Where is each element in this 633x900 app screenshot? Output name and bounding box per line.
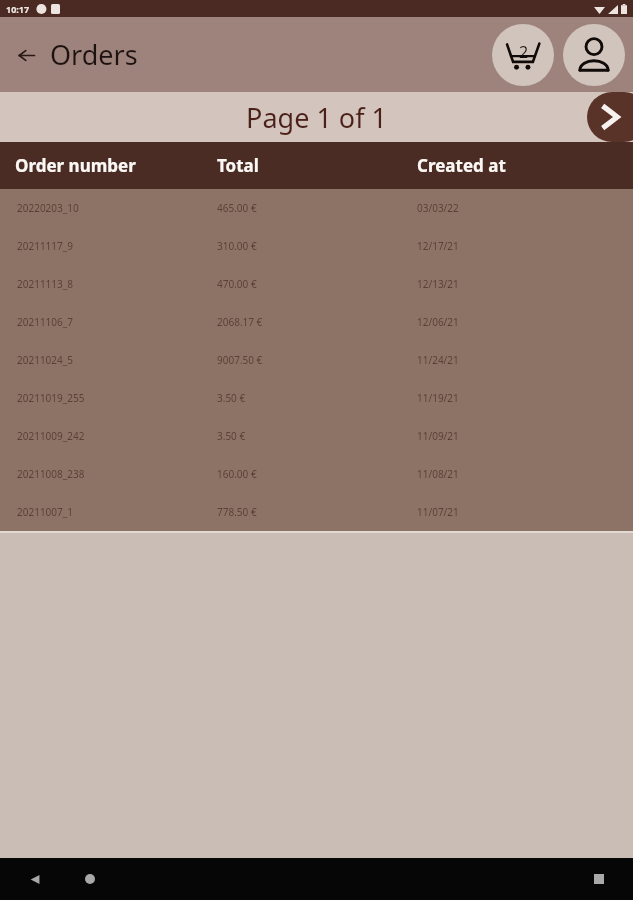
staticText: 12/06/21 [417,315,459,329]
staticText: 3.50 € [217,391,417,405]
button[interactable]: 20211113_8 [0,265,633,303]
button[interactable]: 20211106_7 [0,303,633,341]
staticText: 11/09/21 [417,429,459,443]
staticText: 11/07/21 [417,505,459,519]
staticText: 20211008_238 [17,467,217,481]
button[interactable]: 20211024_5 [0,341,633,379]
staticText: 160.00 € [217,467,417,481]
staticText: 20220203_10 [17,201,217,215]
staticText: 778.50 € [217,505,417,519]
button[interactable]: Recent apps [579,859,619,899]
button[interactable]: Back [14,859,54,899]
staticText: Orders [50,36,138,73]
button[interactable]: Home [70,859,110,899]
staticText: 11/08/21 [417,467,459,481]
staticText: 20211009_242 [17,429,217,443]
button[interactable]: Profile [563,24,625,86]
staticText: 11/19/21 [417,391,459,405]
staticText: 465.00 € [217,201,417,215]
staticText: 20211019_255 [17,391,217,405]
staticText: 470.00 € [217,277,417,291]
staticText: 11/24/21 [417,353,459,367]
staticText: 2068.17 € [217,315,417,329]
staticText: 12/17/21 [417,239,459,253]
staticText: Created at [417,154,506,177]
button[interactable]: 20211009_242 [0,417,633,455]
staticText: 20211024_5 [17,353,217,367]
staticText: 20211106_7 [17,315,217,329]
staticText: Order number [15,154,217,177]
staticText: 10:17 [6,3,30,15]
button[interactable]: Cart, 2 items [492,24,554,86]
staticText: 03/03/22 [417,201,459,215]
staticText: 20211113_8 [17,277,217,291]
staticText: 3.50 € [217,429,417,443]
button[interactable]: Next page [587,92,633,142]
button[interactable]: 20211019_255 [0,379,633,417]
staticText: 2 [519,41,529,63]
staticText: 12/13/21 [417,277,459,291]
staticText: Total [217,154,417,177]
button[interactable]: 20211008_238 [0,455,633,493]
staticText: 310.00 € [217,239,417,253]
button[interactable]: 20220203_10 [0,189,633,227]
staticText: 20211007_1 [17,505,217,519]
button[interactable]: 20211117_9 [0,227,633,265]
button[interactable]: Back [6,35,46,75]
staticText: Page 1 of 1 [246,99,387,136]
button[interactable]: 20211007_1 [0,493,633,531]
staticText: 9007.50 € [217,353,417,367]
staticText: 20211117_9 [17,239,217,253]
